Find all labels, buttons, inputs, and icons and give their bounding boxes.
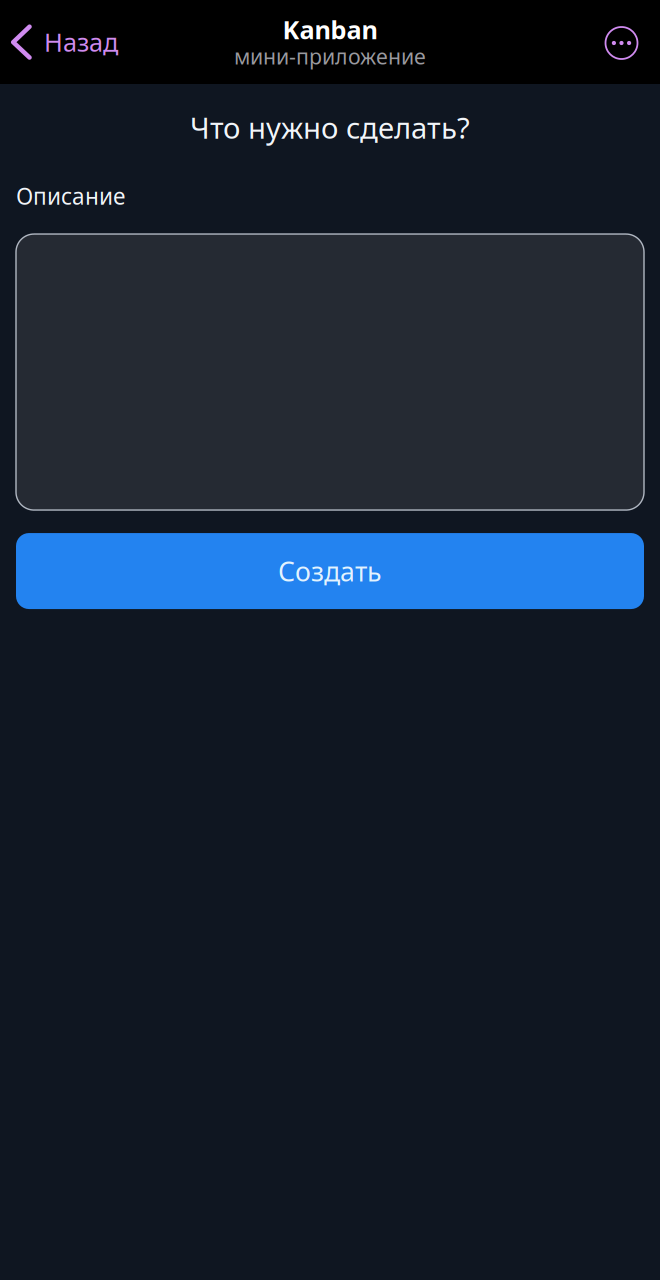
staticText: Создать: [278, 553, 382, 589]
button[interactable]: Описание: [16, 234, 644, 510]
staticText: мини-приложение: [234, 42, 426, 70]
staticText: Назад: [44, 25, 118, 59]
staticText: Kanban: [282, 12, 377, 46]
staticText: Что нужно сделать?: [190, 108, 470, 147]
button[interactable]: Назад: [0, 16, 118, 67]
staticText: Описание: [16, 181, 125, 211]
button[interactable]: More options: [605, 16, 660, 67]
button[interactable]: Создать: [16, 533, 644, 609]
